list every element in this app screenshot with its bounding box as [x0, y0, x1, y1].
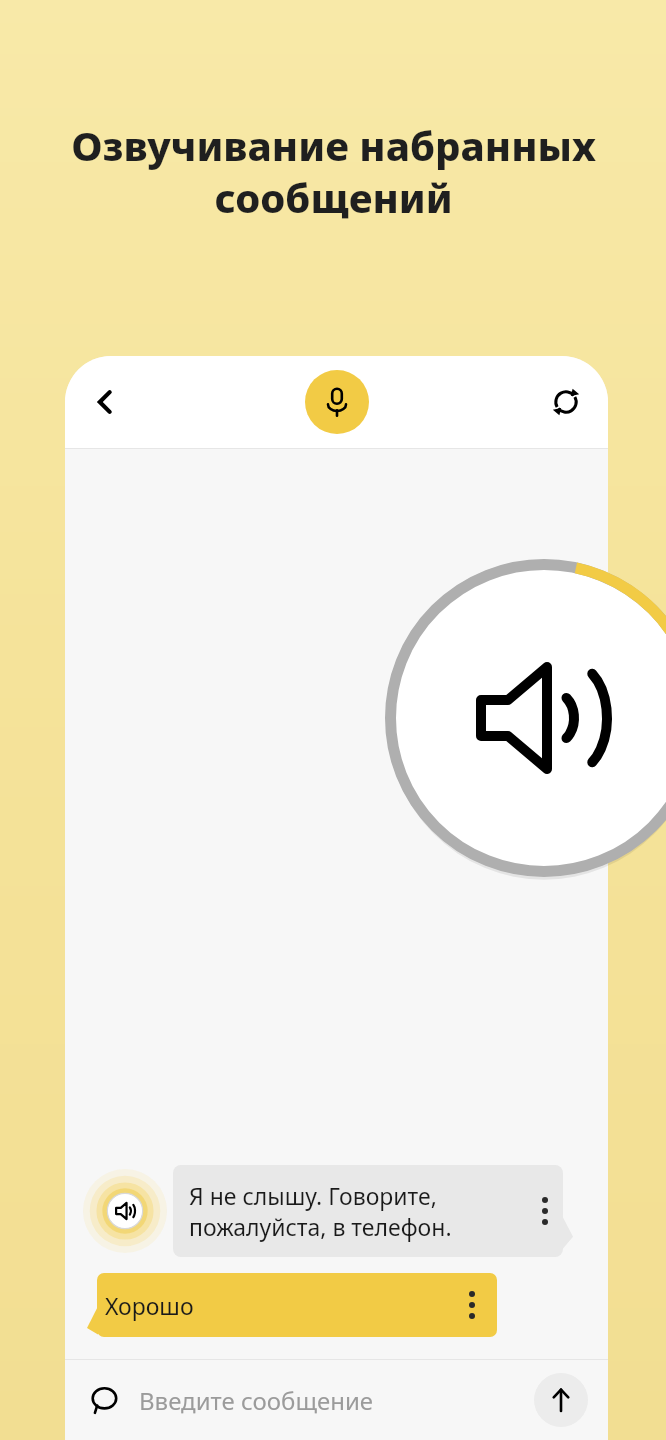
staticText: пожалуйста, в телефон. [189, 1211, 452, 1242]
button[interactable]: Микрофон [305, 370, 369, 434]
button[interactable]: Поменять языки [536, 372, 596, 432]
button[interactable]: Сообщения [83, 1378, 127, 1422]
staticText: Я не слышу. Говорите, [189, 1180, 437, 1211]
button[interactable]: Я не слышу. Говорите, [173, 1165, 573, 1257]
button[interactable]: Озвучить [83, 1169, 167, 1253]
button[interactable]: Назад [75, 372, 135, 432]
button[interactable]: Отправить [534, 1373, 588, 1427]
staticText: Озвучивание набранных сообщений [71, 118, 596, 225]
staticText: Введите сообщение [139, 1384, 374, 1417]
button[interactable]: Введите сообщение [139, 1376, 534, 1424]
staticText: Хорошо [105, 1290, 194, 1321]
button[interactable]: Хорошо [87, 1273, 497, 1337]
button[interactable]: Озвучивание [385, 559, 666, 877]
